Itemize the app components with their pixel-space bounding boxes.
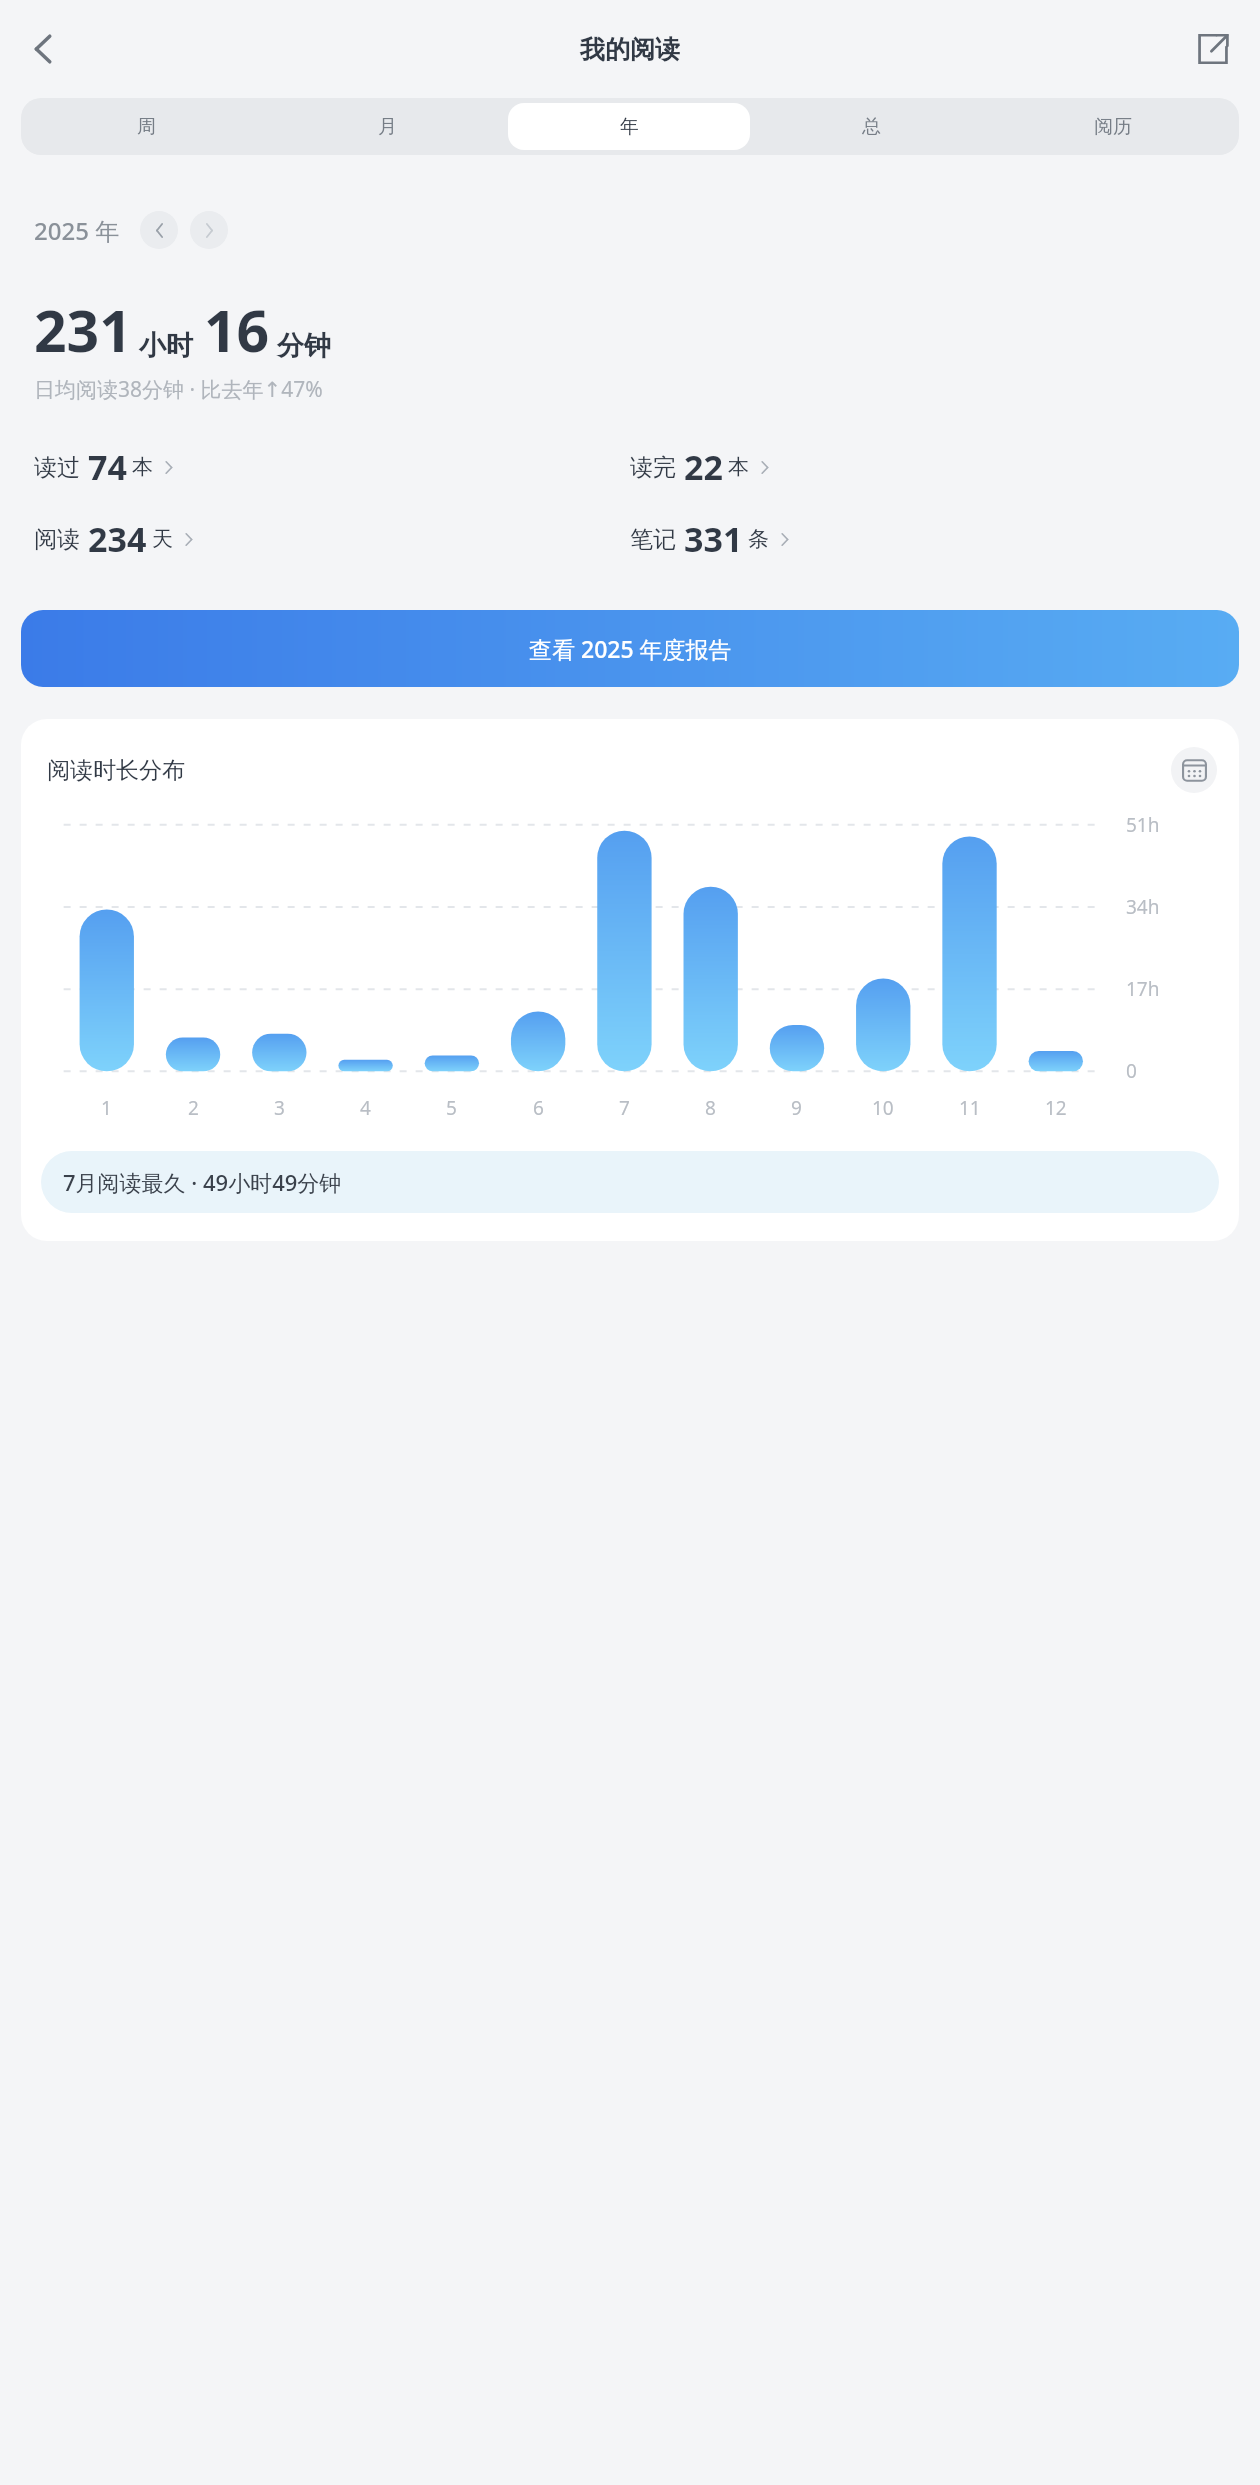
staticText: 51h xyxy=(1126,812,1160,838)
staticText: 笔记 xyxy=(630,525,676,554)
staticText: 6 xyxy=(533,1095,544,1121)
staticText: 查看 2025 年度报告 xyxy=(529,633,732,664)
staticText: 12 xyxy=(1045,1095,1067,1121)
staticText: 阅读时长分布 xyxy=(47,756,185,785)
staticText: 34h xyxy=(1126,894,1160,920)
button[interactable]: 阅历 xyxy=(992,103,1234,150)
staticText: 分钟 xyxy=(277,329,331,363)
staticText: 2 xyxy=(188,1095,199,1121)
staticText: 年 xyxy=(620,115,639,139)
staticText: 月 xyxy=(378,115,397,139)
button[interactable]: 总 xyxy=(750,103,992,150)
button[interactable]: 月 xyxy=(267,103,508,150)
button[interactable]: Previous year xyxy=(140,211,178,249)
button[interactable]: Next year xyxy=(190,211,228,249)
staticText: 小时 xyxy=(139,329,193,363)
staticText: 74 xyxy=(88,444,127,490)
staticText: 3 xyxy=(274,1095,285,1121)
staticText: 周 xyxy=(137,115,156,139)
staticText: 条 xyxy=(748,526,769,552)
button[interactable]: 读过 xyxy=(34,444,630,490)
staticText: 1 xyxy=(101,1095,112,1121)
button[interactable]: 年 xyxy=(508,103,750,150)
button[interactable]: 周 xyxy=(26,103,267,150)
button[interactable]: 2025 年 xyxy=(34,214,120,247)
staticText: 读过 xyxy=(34,453,80,482)
staticText: 0 xyxy=(1126,1058,1137,1084)
button[interactable]: 阅读 xyxy=(34,516,630,562)
staticText: 日均阅读38分钟 · 比去年↑47% xyxy=(34,375,323,404)
button[interactable]: 查看 2025 年度报告 xyxy=(21,610,1239,687)
button[interactable]: Back xyxy=(12,17,76,81)
staticText: 我的阅读 xyxy=(580,34,680,65)
button[interactable]: 笔记 xyxy=(630,516,1226,562)
staticText: 16 xyxy=(204,291,270,369)
button[interactable]: Select month xyxy=(1171,747,1217,793)
button[interactable]: 读完 xyxy=(630,444,1226,490)
staticText: 10 xyxy=(872,1095,894,1121)
staticText: 231 xyxy=(34,291,132,369)
staticText: 17h xyxy=(1126,976,1160,1002)
staticText: 331 xyxy=(684,516,743,562)
button[interactable]: Share xyxy=(1182,18,1244,80)
button[interactable]: 7月阅读最久 · 49小时49分钟 xyxy=(41,1151,1219,1213)
staticText: 本 xyxy=(132,454,153,480)
staticText: 11 xyxy=(959,1095,981,1121)
staticText: 7月阅读最久 · 49小时49分钟 xyxy=(63,1167,342,1197)
staticText: 7 xyxy=(619,1095,630,1121)
staticText: 5 xyxy=(446,1095,457,1121)
staticText: 阅读 xyxy=(34,525,80,554)
staticText: 9 xyxy=(791,1095,802,1121)
staticText: 天 xyxy=(152,526,173,552)
staticText: 234 xyxy=(88,516,147,562)
staticText: 总 xyxy=(862,115,881,139)
staticText: 本 xyxy=(728,454,749,480)
staticText: 阅历 xyxy=(1094,115,1132,139)
staticText: 8 xyxy=(705,1095,716,1121)
staticText: 22 xyxy=(684,444,723,490)
staticText: 读完 xyxy=(630,453,676,482)
staticText: 4 xyxy=(360,1095,371,1121)
